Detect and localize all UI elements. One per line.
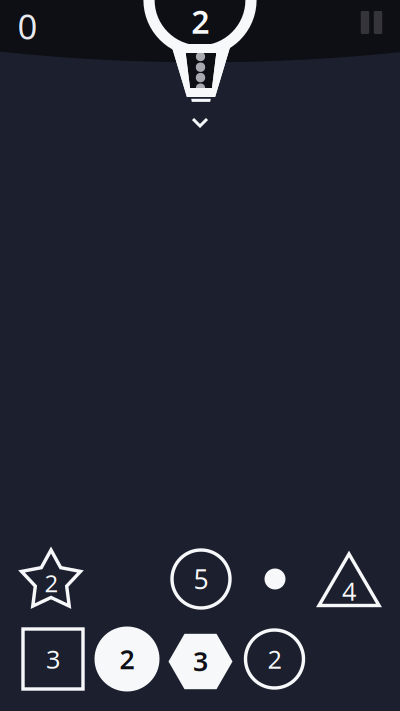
staticText: 3 [46,642,60,676]
staticText: 2 [191,0,209,43]
staticText: 0 [17,3,37,49]
button[interactable]: 2 [92,624,161,693]
button[interactable]: 2 [17,547,85,615]
button[interactable]: Dot piece [259,563,291,595]
button[interactable]: Pause [348,0,394,44]
staticText: 3 [193,643,208,679]
button[interactable]: 3 [21,627,85,691]
staticText: 2 [267,642,281,676]
staticText: 5 [193,561,208,597]
button[interactable]: 5 [170,548,232,610]
staticText: 2 [44,567,58,599]
button[interactable]: 2 [243,628,305,690]
staticText: 2 [119,641,134,677]
button[interactable]: 3 [167,632,233,690]
staticText: 4 [342,574,356,608]
button[interactable]: 4 [316,552,382,608]
